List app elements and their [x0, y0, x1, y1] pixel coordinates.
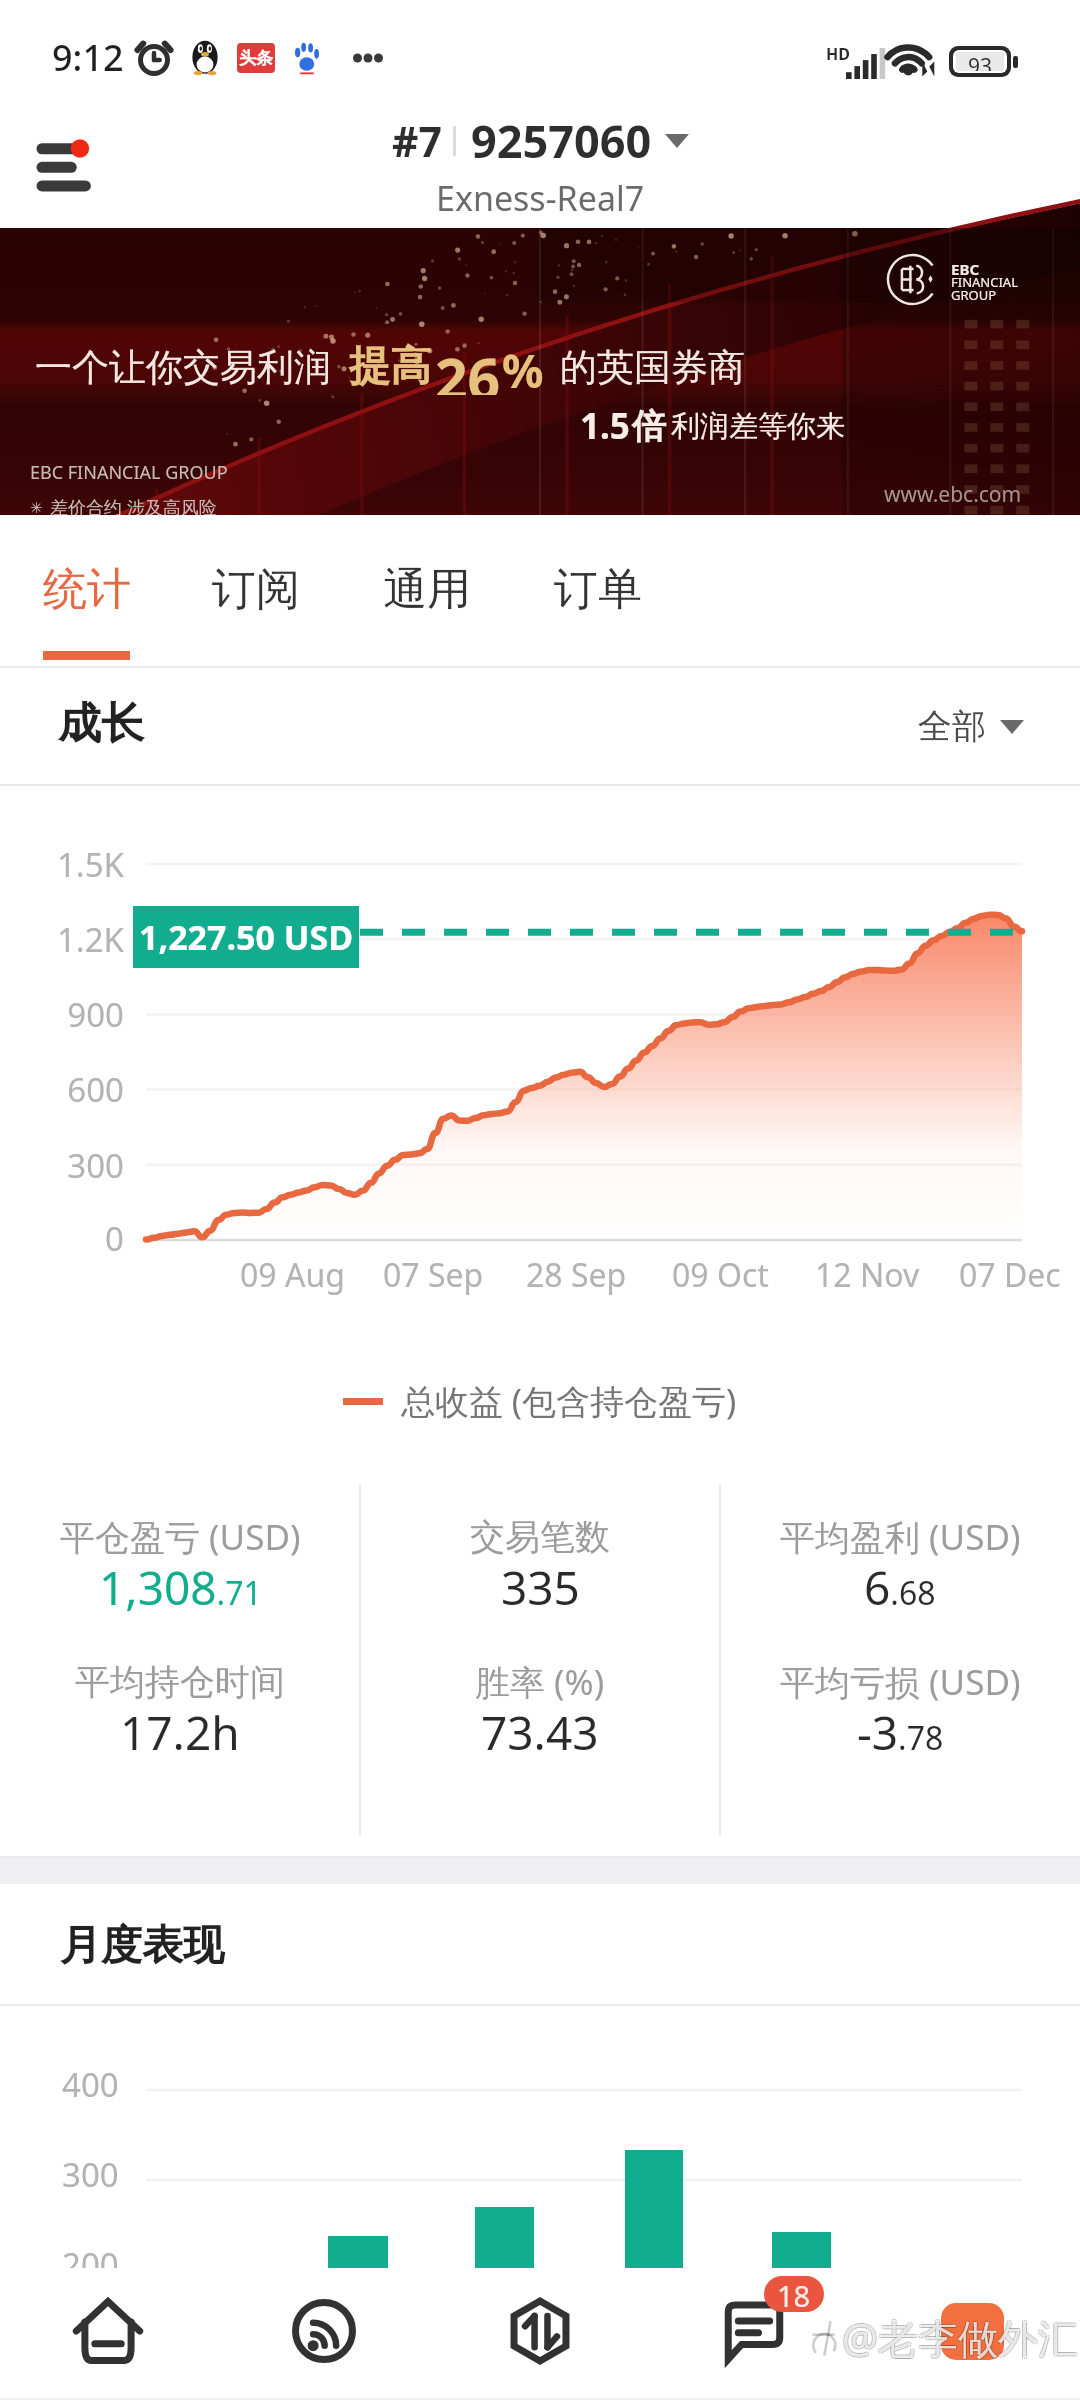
staticText: 9257060	[471, 110, 652, 171]
staticText: 73.43	[481, 1701, 599, 1764]
button[interactable]: 一个让你交易利润	[0, 228, 1080, 515]
staticText: GROUP	[951, 286, 997, 304]
staticText: 9:12	[52, 33, 124, 82]
staticText: 28 Sep	[526, 1253, 627, 1297]
button[interactable]: 订阅	[212, 515, 300, 668]
staticText: 成长	[58, 697, 144, 751]
staticText: 平均盈利 (USD)	[780, 1513, 1021, 1561]
staticText: 的英国券商	[560, 344, 745, 391]
staticText: 订阅	[212, 562, 300, 617]
staticText: 一个让你交易利润	[35, 344, 331, 391]
button[interactable]: 通用	[383, 515, 471, 668]
button[interactable]: 胜率 (%)	[360, 1654, 720, 1784]
button[interactable]: Home	[0, 2268, 216, 2400]
staticText: 600	[67, 1067, 124, 1112]
staticText: 头条	[239, 48, 273, 69]
button[interactable]: #7	[392, 110, 689, 221]
staticText: 12 Nov	[815, 1253, 920, 1297]
staticText: ✳	[30, 499, 43, 516]
staticText: 1.5	[580, 402, 630, 450]
button[interactable]: 订单	[554, 515, 642, 668]
staticText: 200	[62, 2242, 119, 2287]
staticText: 差价合约 涉及高风险	[50, 495, 217, 520]
staticText: @老李做外汇	[841, 2311, 1077, 2366]
staticText: 平仓盈亏 (USD)	[60, 1513, 301, 1561]
staticText: 总收益 (包含持仓盈亏)	[401, 1378, 737, 1424]
button[interactable]: Trade	[432, 2268, 648, 2400]
staticText: 交易笔数	[470, 1515, 610, 1559]
staticText: 月度表现	[60, 1920, 224, 1972]
staticText: 胜率 (%)	[475, 1658, 605, 1706]
staticText: 17.2h	[120, 1701, 240, 1764]
button[interactable]: 全部	[918, 705, 1024, 748]
button[interactable]: 平均盈利 (USD)	[720, 1509, 1080, 1639]
staticText: 335	[501, 1556, 580, 1619]
button[interactable]: 统计	[43, 515, 131, 668]
staticText: 倍	[632, 405, 666, 448]
staticText: 1.2K	[56, 917, 124, 962]
staticText: @老李做外汇	[843, 2311, 1079, 2366]
staticText: 93	[968, 52, 993, 71]
staticText: 1,227.50 USD	[139, 914, 354, 960]
staticText: 900	[67, 992, 124, 1037]
staticText: #7	[392, 113, 442, 169]
button[interactable]: More	[864, 2268, 1080, 2400]
staticText: 1.5K	[56, 842, 124, 887]
staticText: 09 Oct	[672, 1253, 769, 1297]
button[interactable]: Messages	[648, 2268, 864, 2400]
staticText: 6.68	[864, 1556, 936, 1619]
staticText: 26	[435, 339, 501, 395]
staticText: 0	[105, 1216, 124, 1261]
staticText: 1,308.71	[99, 1556, 262, 1619]
staticText: 07 Dec	[959, 1253, 1061, 1297]
staticText: 平均持仓时间	[75, 1660, 285, 1704]
button[interactable]: Quotes	[216, 2268, 432, 2400]
staticText: 通用	[383, 562, 471, 617]
staticText: 平均亏损 (USD)	[780, 1658, 1021, 1706]
staticText: 300	[62, 2152, 119, 2197]
staticText: @老李做外汇	[843, 2309, 1079, 2364]
staticText: 09 Aug	[240, 1253, 345, 1297]
staticText: 18	[777, 2276, 811, 2312]
staticText: 300	[67, 1143, 124, 1188]
staticText: EBC FINANCIAL GROUP	[30, 460, 228, 485]
staticText: Exness-Real7	[436, 175, 645, 221]
staticText: %	[502, 339, 544, 395]
staticText: 07 Sep	[383, 1253, 484, 1297]
button[interactable]: 平仓盈亏 (USD)	[0, 1509, 360, 1639]
button[interactable]: 平均亏损 (USD)	[720, 1654, 1080, 1784]
button[interactable]: 交易笔数	[360, 1509, 720, 1639]
staticText: HD	[826, 43, 850, 65]
button[interactable]: 平均持仓时间	[0, 1654, 360, 1784]
staticText: www.ebc.com	[884, 480, 1022, 509]
staticText: 400	[62, 2062, 119, 2107]
staticText: 利润差等你来	[671, 408, 845, 445]
staticText: 提高	[349, 341, 431, 393]
staticText: @老李做外汇	[841, 2309, 1077, 2364]
staticText: 订单	[554, 562, 642, 617]
staticText: 统计	[43, 562, 131, 617]
button[interactable]: Menu	[30, 125, 110, 205]
staticText: -3.78	[857, 1701, 944, 1764]
staticText: 全部	[918, 705, 986, 748]
staticText: FINANCIAL	[951, 273, 1018, 291]
staticText: EBC	[951, 259, 980, 279]
staticText: @老李做外汇	[842, 2310, 1078, 2365]
